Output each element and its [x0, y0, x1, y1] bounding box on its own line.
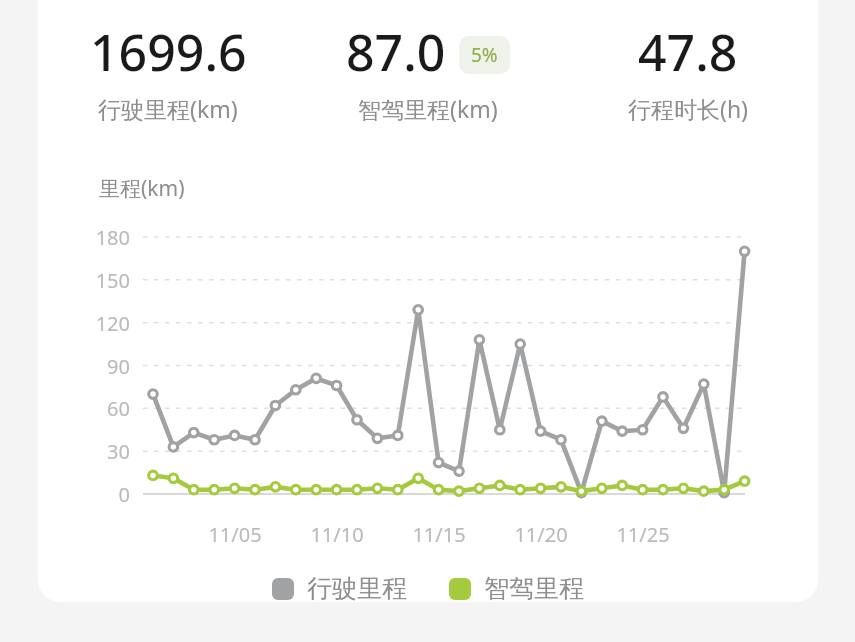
button[interactable]: 行驶里程 [272, 573, 407, 604]
staticText: 行驶里程(km) [98, 93, 238, 124]
staticText: 11/10 [292, 521, 382, 548]
staticText: 11/15 [394, 521, 484, 548]
staticText: 180 [68, 224, 130, 251]
staticText: 60 [68, 395, 130, 422]
staticText: 30 [68, 438, 130, 465]
staticText: 11/25 [598, 521, 688, 548]
staticText: 47.8 [638, 18, 738, 86]
staticText: 行驶里程 [307, 573, 407, 604]
button[interactable]: 87.0 [298, 18, 558, 124]
staticText: 90 [68, 353, 130, 380]
button[interactable]: 1699.6 [38, 18, 298, 124]
staticText: 智驾里程 [484, 573, 584, 604]
staticText: 1699.6 [90, 18, 247, 86]
button[interactable]: 智驾里程 [449, 573, 584, 604]
staticText: 5% [471, 42, 498, 68]
staticText: 行程时长(h) [628, 93, 749, 124]
staticText: 87.0 [346, 18, 446, 86]
staticText: 0 [68, 481, 130, 508]
staticText: 智驾里程(km) [358, 93, 498, 124]
staticText: 11/05 [190, 521, 280, 548]
staticText: 120 [68, 310, 130, 337]
staticText: 11/20 [496, 521, 586, 548]
staticText: 150 [68, 267, 130, 294]
button[interactable]: 47.8 [558, 18, 818, 124]
staticText: 里程(km) [99, 174, 185, 203]
